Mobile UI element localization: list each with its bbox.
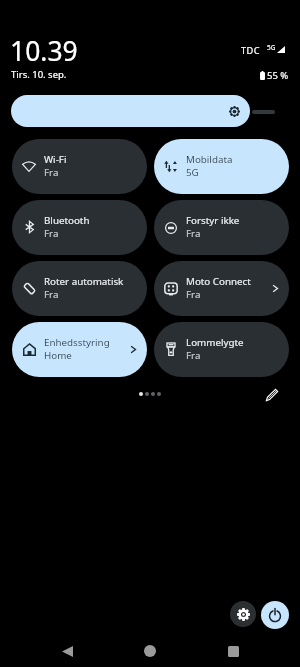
button[interactable]: Moto Connect bbox=[154, 261, 289, 316]
button[interactable]: Forstyr ikke bbox=[154, 200, 289, 255]
staticText: Moto Connect bbox=[186, 275, 251, 288]
staticText: 5G bbox=[267, 43, 276, 52]
button[interactable]: Indstillinger bbox=[230, 601, 256, 627]
staticText: Fra bbox=[44, 166, 59, 179]
button[interactable]: Wi-Fi bbox=[12, 139, 147, 194]
staticText: Home bbox=[44, 349, 72, 362]
staticText: 5G bbox=[186, 166, 199, 179]
button[interactable]: Tilbage bbox=[50, 634, 84, 667]
button[interactable]: Oversigt bbox=[216, 634, 250, 667]
button[interactable]: Mobildata bbox=[154, 139, 289, 194]
staticText: Fra bbox=[186, 349, 201, 362]
button[interactable]: Bluetooth bbox=[12, 200, 147, 255]
button[interactable]: Hjem bbox=[133, 634, 167, 667]
staticText: Roter automatisk bbox=[44, 275, 124, 288]
staticText: Fra bbox=[186, 288, 201, 301]
button[interactable]: Roter automatisk bbox=[12, 261, 147, 316]
staticText: Wi-Fi bbox=[44, 153, 67, 166]
staticText: Fra bbox=[186, 227, 201, 240]
staticText: Forstyr ikke bbox=[186, 214, 240, 227]
staticText: Tirs. 10. sep. bbox=[11, 68, 67, 81]
button[interactable]: Lommelygte bbox=[154, 322, 289, 377]
staticText: 55 % bbox=[267, 69, 289, 82]
staticText: Fra bbox=[44, 227, 59, 240]
staticText: Fra bbox=[44, 288, 59, 301]
staticText: Bluetooth bbox=[44, 214, 90, 227]
staticText: Lommelygte bbox=[186, 336, 244, 349]
button[interactable]: Enhedsstyring bbox=[12, 322, 147, 377]
button[interactable]: Sluk bbox=[261, 601, 289, 629]
staticText: 10.39 bbox=[10, 33, 78, 69]
button[interactable]: Brightness bbox=[11, 95, 250, 127]
staticText: Enhedsstyring bbox=[44, 336, 110, 349]
staticText: Mobildata bbox=[186, 153, 233, 166]
button[interactable]: Rediger bbox=[261, 383, 283, 405]
staticText: TDC bbox=[241, 44, 261, 57]
